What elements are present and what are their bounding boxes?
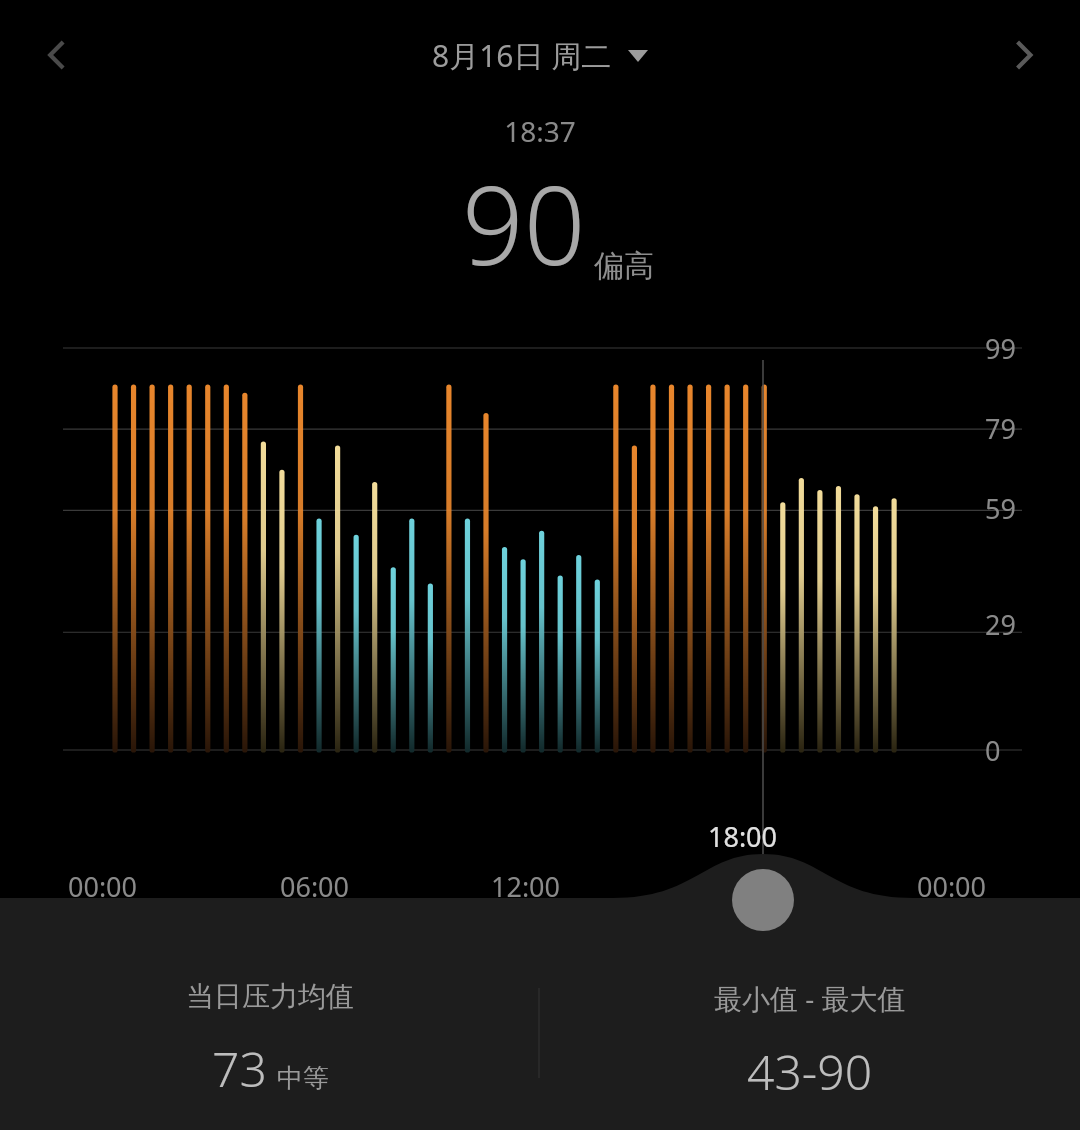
- staticText: 偏高: [594, 247, 654, 285]
- staticText: 73: [212, 1036, 267, 1101]
- staticText: 00:00: [68, 868, 138, 905]
- staticText: 18:00: [708, 818, 778, 855]
- staticText: 43-90: [747, 1039, 873, 1104]
- button[interactable]: 8月16日 周二: [432, 35, 648, 76]
- staticText: 79: [985, 410, 1016, 447]
- staticText: 00:00: [917, 868, 987, 905]
- staticText: 18:37: [504, 112, 576, 150]
- button[interactable]: Previous day: [20, 18, 94, 92]
- staticText: 29: [985, 606, 1016, 643]
- staticText: 90: [462, 150, 586, 297]
- staticText: 中等: [277, 1062, 329, 1095]
- staticText: 99: [985, 330, 1016, 367]
- button[interactable]: 当日压力均值: [0, 975, 540, 1105]
- staticText: 8月16日 周二: [432, 35, 612, 76]
- staticText: 06:00: [280, 868, 350, 905]
- button[interactable]: Next day: [986, 18, 1060, 92]
- staticText: 最小值 - 最大值: [714, 979, 906, 1017]
- staticText: 当日压力均值: [186, 979, 354, 1014]
- staticText: 12:00: [491, 868, 561, 905]
- button[interactable]: 最小值 - 最大值: [540, 975, 1080, 1108]
- staticText: 0: [985, 732, 1001, 769]
- staticText: 59: [985, 490, 1016, 527]
